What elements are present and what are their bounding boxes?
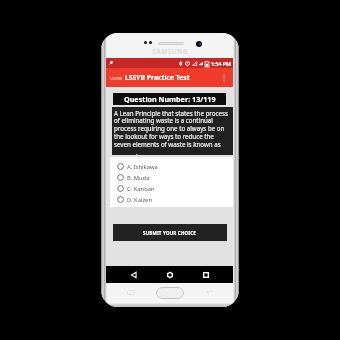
staticText: D. Kaizen <box>127 196 152 204</box>
staticText: A. Ishikawa <box>127 163 158 171</box>
button[interactable]: Recents <box>197 266 214 283</box>
button[interactable]: A. Ishikawa <box>117 161 233 172</box>
staticText: SUBMIT YOUR CHOICE <box>143 230 197 236</box>
staticText: C. Kanban <box>127 185 155 193</box>
button[interactable]: App logo <box>109 71 123 85</box>
button[interactable]: Back <box>125 266 142 283</box>
staticText: A Lean Principle that states the process… <box>114 109 231 155</box>
button[interactable]: C. Kanban <box>117 183 233 194</box>
button[interactable]: B. Muda <box>117 172 233 183</box>
button[interactable]: More options <box>218 72 230 84</box>
staticText: 1:54 PM <box>211 60 231 67</box>
staticText: Question Number: 13/119 <box>124 94 216 104</box>
staticText: B. Muda <box>127 174 150 182</box>
button[interactable]: Home <box>161 266 178 283</box>
staticText: LSSYB <box>110 76 122 81</box>
staticText: SAMSUNG <box>101 47 239 56</box>
button[interactable]: D. Kaizen <box>117 194 233 205</box>
staticText: LSSYB Practice Test <box>125 73 190 82</box>
button[interactable]: Home button <box>156 287 184 299</box>
button[interactable]: SUBMIT YOUR CHOICE <box>113 224 227 241</box>
